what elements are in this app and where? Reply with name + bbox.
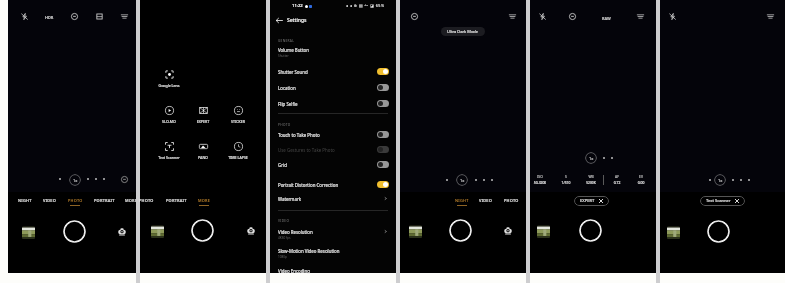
button[interactable]: Focus peaking	[565, 9, 579, 23]
button[interactable]: Text Scanner	[147, 153, 191, 161]
button[interactable]: Zoom 1x	[585, 152, 597, 164]
button[interactable]: PORTRAIT	[156, 198, 196, 211]
button[interactable]: ISO	[526, 174, 554, 190]
staticText: Text Scanner	[706, 198, 731, 204]
button[interactable]: Switch camera	[245, 225, 257, 237]
button[interactable]: PANO	[181, 153, 225, 161]
staticText: Slow-Motion Video Resolution	[278, 248, 340, 254]
staticText: PHOTO	[278, 123, 291, 127]
staticText: NIGHT	[18, 198, 32, 203]
button[interactable]: Zoom 1x	[456, 174, 468, 186]
button[interactable]: Switch camera	[116, 226, 128, 238]
staticText: WB	[577, 174, 605, 178]
button[interactable]: Text Scanner	[700, 196, 745, 206]
button[interactable]: Touch to Take Photo	[270, 130, 396, 145]
button[interactable]: STICKER	[216, 117, 260, 125]
button[interactable]: NIGHT	[442, 198, 482, 211]
staticText: HDR	[45, 15, 54, 20]
staticText: Volume Button	[278, 47, 309, 53]
button[interactable]: Google Lens	[147, 81, 191, 89]
button[interactable]: Switch camera	[502, 225, 514, 237]
button[interactable]: Zoom 1x	[69, 174, 81, 186]
staticText: EV	[627, 174, 655, 178]
staticText: Video Resolution	[278, 229, 313, 235]
button[interactable]: PORTRAIT	[84, 198, 124, 211]
button[interactable]: Zoom settings	[119, 174, 129, 184]
button[interactable]: AI scene	[67, 9, 81, 23]
button[interactable]: Use Gestures to Take Photo	[270, 145, 396, 160]
staticText: AF	[603, 174, 631, 178]
button[interactable]: Grid	[270, 160, 396, 175]
button[interactable]: Gallery	[537, 225, 550, 238]
button[interactable]: Gallery	[667, 226, 680, 239]
button[interactable]: Settings	[633, 9, 647, 23]
button[interactable]: Night mode	[407, 9, 421, 23]
button[interactable]: Gallery	[22, 226, 35, 239]
staticText: TIME LAPSE	[216, 155, 260, 160]
button[interactable]: EV	[627, 174, 655, 190]
button[interactable]: Slow-Motion Video Resolution	[270, 246, 396, 264]
button[interactable]: MORE	[111, 198, 151, 211]
button[interactable]: Location	[270, 83, 396, 98]
button[interactable]: EXPERT	[181, 117, 225, 125]
staticText: PANO	[181, 155, 225, 160]
button[interactable]: Shutter	[579, 219, 602, 242]
button[interactable]: Settings	[505, 9, 519, 23]
staticText: RAW	[602, 16, 611, 21]
staticText: NIGHT	[455, 198, 469, 203]
button[interactable]: Flip Selfie	[270, 99, 396, 114]
staticText: 0.00	[627, 180, 655, 184]
staticText: Shutter	[278, 54, 289, 58]
button[interactable]: Shutter Sound	[270, 67, 396, 82]
button[interactable]: VIDEO	[30, 198, 70, 211]
button[interactable]: MORE	[184, 198, 224, 211]
button[interactable]: PHOTO	[126, 198, 166, 211]
staticText: Grid	[278, 162, 287, 168]
button[interactable]: Settings	[117, 9, 131, 23]
staticText: MORE	[198, 198, 211, 203]
button[interactable]: Settings	[763, 9, 777, 23]
button[interactable]: AF	[603, 174, 631, 190]
staticText: PHOTO	[504, 198, 519, 203]
button[interactable]: Video Resolution	[270, 227, 396, 245]
staticText: Location	[278, 85, 296, 91]
staticText: PORTRAIT	[94, 198, 115, 203]
button[interactable]: S	[552, 174, 580, 190]
button[interactable]: NIGHT	[5, 198, 45, 211]
button[interactable]: Ultra Dark Mode	[441, 27, 485, 36]
staticText: Ultra Dark Mode	[447, 29, 479, 34]
staticText: VIDEO	[479, 198, 493, 203]
button[interactable]: Shutter	[63, 220, 86, 243]
button[interactable]: Gallery	[409, 225, 422, 238]
button[interactable]: TIME LAPSE	[216, 153, 260, 161]
staticText: GENERAL	[278, 39, 295, 43]
button[interactable]: Watermark	[270, 194, 396, 209]
button[interactable]: WB	[577, 174, 605, 190]
button[interactable]: Flash off	[665, 9, 679, 23]
staticText: Google Lens	[147, 83, 191, 88]
button[interactable]: VIDEO	[466, 198, 506, 211]
button[interactable]: Shutter	[707, 220, 730, 243]
button[interactable]: Aspect ratio	[92, 9, 106, 23]
button[interactable]: EXPERT	[574, 196, 609, 206]
button[interactable]: PHOTO	[55, 198, 95, 211]
button[interactable]: HDR	[42, 10, 56, 24]
button[interactable]: Portrait Distortion Correction	[270, 180, 396, 195]
button[interactable]: Gallery	[151, 225, 164, 238]
staticText: Use Gestures to Take Photo	[278, 147, 335, 153]
button[interactable]: SLO-MO	[147, 117, 191, 125]
button[interactable]: RAW	[598, 10, 614, 26]
staticText: Touch to Take Photo	[278, 132, 320, 138]
button[interactable]: Shutter	[191, 219, 214, 242]
button[interactable]: PHOTO	[491, 198, 531, 211]
staticText: Flip Selfie	[278, 101, 298, 107]
button[interactable]: Flash off	[535, 9, 549, 23]
button[interactable]: Volume Button	[270, 45, 396, 63]
staticText: 11:22	[292, 3, 303, 9]
button[interactable]: Zoom 1x	[714, 174, 726, 186]
button[interactable]: Shutter	[449, 219, 472, 242]
button[interactable]: Video Encoding	[270, 266, 396, 281]
button[interactable]: Flash off	[17, 9, 31, 23]
staticText: S	[552, 174, 580, 178]
button[interactable]: Back	[274, 15, 285, 26]
